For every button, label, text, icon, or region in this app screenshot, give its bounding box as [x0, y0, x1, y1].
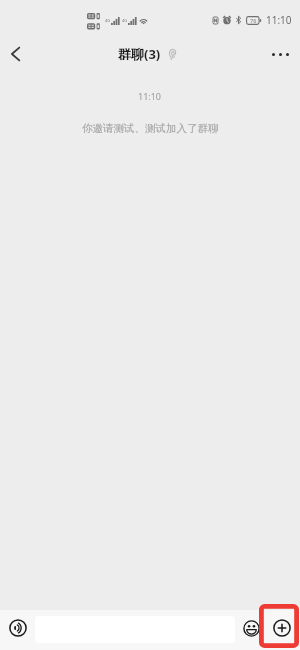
staticText: 11:10: [266, 13, 292, 27]
button[interactable]: Voice message: [0, 608, 35, 648]
button[interactable]: More options: [260, 34, 300, 74]
button[interactable]: Back: [0, 34, 30, 74]
staticText: 群聊(3): [118, 45, 161, 63]
staticText: 你邀请测试、测试加入了群聊: [82, 122, 219, 135]
staticText: 4G: [122, 18, 128, 23]
staticText: 4G: [105, 18, 111, 23]
button[interactable]: More functions: [264, 608, 300, 648]
staticText: 76: [250, 17, 257, 24]
button[interactable]: Emoji: [237, 608, 266, 648]
staticText: 11:10: [138, 90, 162, 102]
